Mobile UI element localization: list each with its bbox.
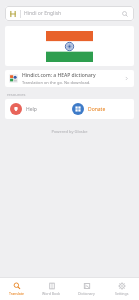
button[interactable]: India flag bbox=[5, 26, 134, 66]
button[interactable]: Word Book bbox=[34, 278, 69, 300]
staticText: Translate bbox=[9, 291, 25, 296]
button[interactable]: Search bbox=[120, 9, 130, 19]
button[interactable]: Settings bbox=[104, 278, 139, 300]
other: India flag bbox=[46, 31, 93, 62]
staticText: Donate bbox=[88, 106, 106, 113]
staticText: Help bbox=[26, 106, 37, 113]
staticText: Settings bbox=[115, 291, 129, 296]
staticText: Hindi or English bbox=[24, 10, 62, 17]
button[interactable]: Hindict.com: a HEAP dictionary bbox=[5, 70, 134, 87]
staticText: Powered by Glosbe bbox=[0, 129, 139, 134]
staticText: Translation on the go. No download. bbox=[22, 80, 91, 85]
button[interactable]: Hindi or English bbox=[5, 6, 134, 21]
staticText: Hindict.com: a HEAP dictionary bbox=[22, 72, 96, 79]
button[interactable]: Dictionary bbox=[69, 278, 104, 300]
staticText: resources bbox=[7, 92, 26, 97]
button[interactable]: Help bbox=[5, 99, 69, 119]
button[interactable]: Donate bbox=[69, 99, 134, 119]
staticText: Word Book bbox=[42, 291, 61, 296]
staticText: Dictionary bbox=[78, 291, 95, 296]
button[interactable]: Translate bbox=[0, 278, 34, 300]
